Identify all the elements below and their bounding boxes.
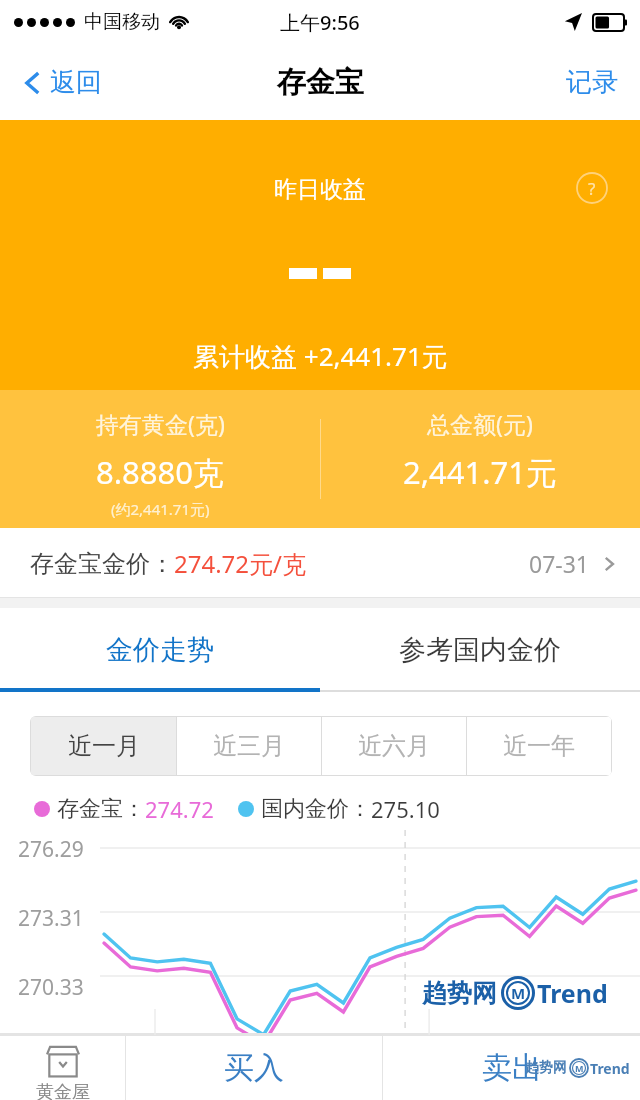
staticText: 总金额(元) xyxy=(427,408,533,439)
staticText: 276.29 xyxy=(18,835,84,864)
button[interactable]: 近一月 xyxy=(31,717,176,775)
staticText: 270.33 xyxy=(18,973,84,1002)
staticText: 昨日收益 xyxy=(274,175,366,204)
staticText: 2,441.71元 xyxy=(403,451,558,493)
button[interactable]: 金价走势 xyxy=(0,608,320,692)
staticText: 买入 xyxy=(224,1049,284,1087)
button[interactable]: 参考国内金价 xyxy=(320,608,640,692)
button[interactable]: 返回 xyxy=(0,58,118,107)
staticText: 8.8880克 xyxy=(96,451,224,493)
staticText: 持有黄金(克) xyxy=(96,408,225,439)
staticText: 近一月 xyxy=(68,731,140,761)
staticText: M xyxy=(511,983,526,1003)
staticText: 存金宝： xyxy=(57,795,145,823)
staticText: M xyxy=(575,1062,584,1074)
staticText: 275.10 xyxy=(371,794,440,824)
staticText: 274.72元/克 xyxy=(174,547,306,580)
staticText: 趋势网 xyxy=(525,1059,567,1077)
staticText: 卖出 xyxy=(482,1049,542,1087)
staticText: 上午9:56 xyxy=(280,9,360,36)
staticText: Trend xyxy=(537,976,608,1010)
staticText: 07-31 xyxy=(529,548,590,579)
staticText: (约2,441.71元) xyxy=(111,499,210,519)
staticText: 273.31 xyxy=(18,904,84,933)
staticText: 趋势网 xyxy=(422,978,497,1009)
staticText: 中国移动 xyxy=(84,10,160,34)
button[interactable]: 黄金屋 xyxy=(0,1035,125,1100)
staticText: 参考国内金价 xyxy=(399,633,561,667)
button[interactable]: 近三月 xyxy=(177,717,321,775)
staticText: 金价走势 xyxy=(106,633,214,667)
staticText: 近六月 xyxy=(358,731,430,761)
button[interactable]: 买入 xyxy=(126,1035,382,1100)
staticText: 近一年 xyxy=(503,731,575,761)
staticText: 近三月 xyxy=(213,731,285,761)
staticText: 黄金屋 xyxy=(36,1081,90,1100)
staticText: 存金宝 xyxy=(277,64,364,101)
staticText: 返回 xyxy=(50,66,102,99)
staticText: 累计收益 +2,441.71元 xyxy=(193,338,448,374)
button[interactable]: 卖出 xyxy=(383,1035,640,1100)
button[interactable]: 存金宝金价： xyxy=(0,528,640,598)
button[interactable]: 帮助 xyxy=(576,172,608,204)
staticText: Trend xyxy=(590,1059,630,1078)
button[interactable]: 记录 xyxy=(544,56,640,109)
staticText: ? xyxy=(588,177,596,200)
staticText: 国内金价： xyxy=(261,795,371,823)
button[interactable]: 近六月 xyxy=(322,717,466,775)
staticText: 记录 xyxy=(566,66,618,99)
staticText: 存金宝金价： xyxy=(30,549,174,579)
button[interactable]: 近一年 xyxy=(467,717,611,775)
staticText: 274.72 xyxy=(145,794,214,824)
